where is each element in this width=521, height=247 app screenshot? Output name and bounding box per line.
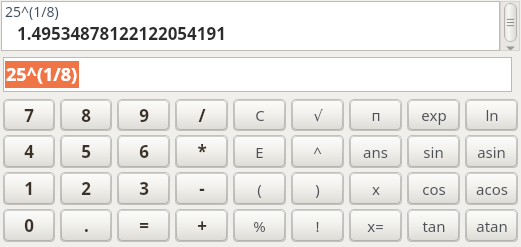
button[interactable]: 2 <box>60 172 112 205</box>
staticText: 4 <box>24 140 34 163</box>
button[interactable]: ( <box>233 172 286 205</box>
staticText: 2 <box>81 177 91 200</box>
button[interactable]: sin <box>407 135 460 168</box>
staticText: 8 <box>81 104 91 127</box>
staticText: + <box>197 214 207 237</box>
button[interactable]: Scroll <box>500 1 520 51</box>
staticText: ans <box>363 142 388 162</box>
staticText: x= <box>367 216 384 236</box>
staticText: asin <box>477 142 506 162</box>
button[interactable]: 5 <box>60 135 112 168</box>
staticText: exp <box>421 105 447 125</box>
button[interactable]: 9 <box>117 99 170 131</box>
staticText: √ <box>313 107 323 124</box>
staticText: 6 <box>139 140 149 163</box>
staticText: 0 <box>24 214 34 237</box>
button[interactable]: 25^(1/8) <box>3 57 512 92</box>
staticText: - <box>199 177 205 200</box>
staticText: 5 <box>81 140 91 163</box>
staticText: ln <box>485 105 499 125</box>
staticText: 7 <box>24 104 34 127</box>
staticText: * <box>197 140 207 163</box>
button[interactable]: acos <box>465 172 518 205</box>
staticText: C <box>255 105 265 125</box>
staticText: 1 <box>24 177 34 200</box>
button[interactable]: п <box>349 99 402 131</box>
button[interactable]: √ <box>291 99 344 131</box>
button[interactable]: asin <box>465 135 518 168</box>
staticText: п <box>371 105 381 125</box>
button[interactable]: 0 <box>3 209 55 242</box>
button[interactable]: ans <box>349 135 402 168</box>
staticText: 9 <box>139 104 149 127</box>
button[interactable]: . <box>60 209 112 242</box>
button[interactable]: 4 <box>3 135 55 168</box>
staticText: / <box>198 104 206 127</box>
button[interactable]: ^ <box>291 135 344 168</box>
staticText: 25^(1/8) <box>5 2 59 21</box>
button[interactable]: + <box>175 209 228 242</box>
staticText: x <box>372 179 380 199</box>
button[interactable]: / <box>175 99 228 131</box>
button[interactable]: tan <box>407 209 460 242</box>
staticText: ! <box>315 216 320 236</box>
button[interactable]: - <box>175 172 228 205</box>
button[interactable]: C <box>233 99 286 131</box>
staticText: 1.49534878122122054191 <box>17 22 226 45</box>
button[interactable]: 25^(1/8) <box>1 1 500 51</box>
button[interactable]: 6 <box>117 135 170 168</box>
button[interactable]: 7 <box>3 99 55 131</box>
button[interactable]: E <box>233 135 286 168</box>
staticText: cos <box>422 179 446 199</box>
staticText: . <box>84 214 89 237</box>
staticText: = <box>139 214 149 237</box>
staticText: atan <box>476 216 508 236</box>
button[interactable]: cos <box>407 172 460 205</box>
staticText: 25^(1/8) <box>6 62 78 87</box>
button[interactable]: 8 <box>60 99 112 131</box>
staticText: sin <box>423 142 444 162</box>
staticText: ^ <box>313 142 322 162</box>
staticText: 3 <box>139 177 149 200</box>
staticText: acos <box>476 179 508 199</box>
button[interactable]: x <box>349 172 402 205</box>
button[interactable]: % <box>233 209 286 242</box>
button[interactable]: 1 <box>3 172 55 205</box>
button[interactable]: atan <box>465 209 518 242</box>
button[interactable]: ln <box>465 99 518 131</box>
button[interactable]: = <box>117 209 170 242</box>
staticText: E <box>255 142 264 162</box>
button[interactable]: x= <box>349 209 402 242</box>
button[interactable]: 3 <box>117 172 170 205</box>
staticText: ( <box>257 179 262 199</box>
button[interactable]: * <box>175 135 228 168</box>
button[interactable]: exp <box>407 99 460 131</box>
staticText: tan <box>422 216 446 236</box>
button[interactable]: ! <box>291 209 344 242</box>
button[interactable]: ) <box>291 172 344 205</box>
staticText: % <box>253 216 266 236</box>
staticText: ) <box>315 179 320 199</box>
